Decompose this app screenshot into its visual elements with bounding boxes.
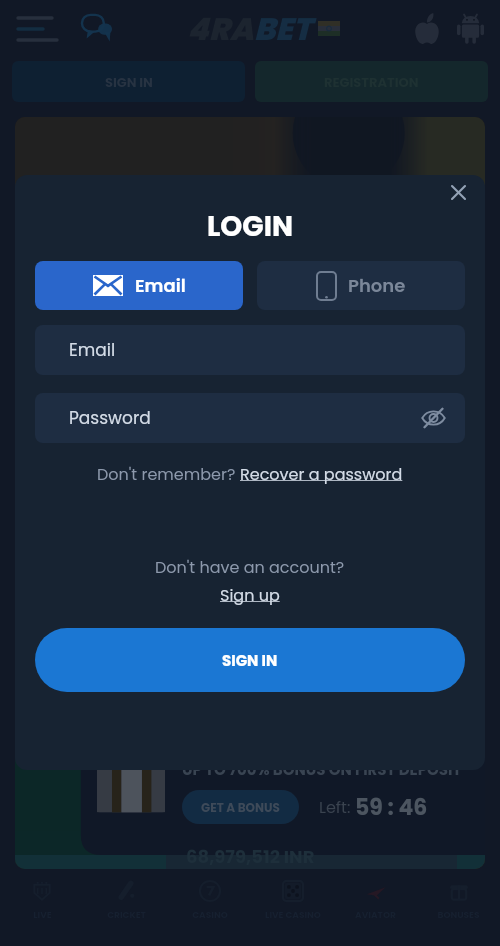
staticText: LIVE CASINO xyxy=(265,909,321,922)
button[interactable]: SIGN IN xyxy=(35,628,465,692)
staticText: BONUSES xyxy=(437,909,480,922)
staticText: LOGIN xyxy=(207,207,294,246)
button[interactable]: Show password xyxy=(418,403,448,433)
staticText: Don't have an account? xyxy=(155,556,345,578)
button[interactable]: Menu xyxy=(18,13,58,45)
staticText: LIVE xyxy=(33,909,52,922)
staticText: Left: xyxy=(319,796,355,818)
button[interactable]: Recover a password xyxy=(240,463,403,485)
staticText: UP TO 700% BONUS ON FIRST DEPOSIT xyxy=(182,759,462,780)
button[interactable]: Email xyxy=(35,325,465,375)
staticText: Email xyxy=(69,338,116,362)
staticText: Don't remember? xyxy=(97,463,240,485)
button[interactable]: SIGN IN xyxy=(12,61,245,102)
button[interactable]: iOS app xyxy=(414,13,440,45)
staticText: GET A BONUS xyxy=(201,799,280,816)
staticText: 59 : 46 xyxy=(355,792,428,823)
button[interactable]: Email xyxy=(35,261,243,310)
staticText: CRICKET xyxy=(107,909,146,922)
staticText: REGISTRATION xyxy=(324,73,419,91)
staticText: 68,979,512 INR xyxy=(186,844,315,869)
button[interactable]: Password xyxy=(35,393,465,443)
button[interactable]: Support chat xyxy=(80,13,113,44)
staticText: SIGN IN xyxy=(105,73,153,91)
button[interactable]: Sign up xyxy=(220,584,280,606)
staticText: Phone xyxy=(348,273,406,298)
staticText: CASINO xyxy=(192,909,228,922)
staticText: Password xyxy=(69,406,151,430)
staticText: AVIATOR xyxy=(355,909,396,922)
button[interactable]: 4RA xyxy=(187,7,340,50)
staticText: SIGN IN xyxy=(222,650,278,671)
button[interactable]: Close xyxy=(447,181,469,203)
staticText: 4RA xyxy=(187,7,254,50)
button[interactable]: Phone xyxy=(257,261,465,310)
staticText: BET xyxy=(254,7,312,50)
button[interactable]: GET A BONUS xyxy=(182,790,299,824)
button[interactable]: Android app xyxy=(457,13,484,44)
staticText: Email xyxy=(135,273,186,298)
